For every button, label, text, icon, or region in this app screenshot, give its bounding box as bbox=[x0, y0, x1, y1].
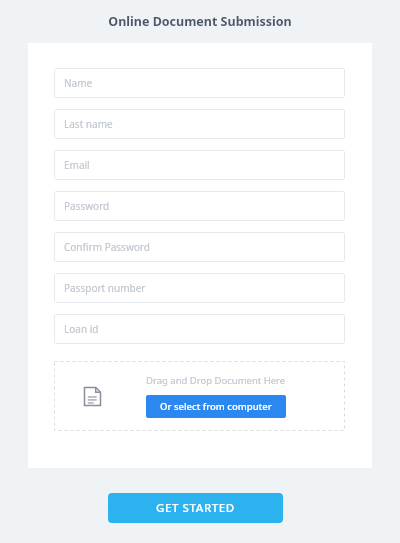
staticText: Email bbox=[64, 158, 90, 172]
button[interactable]: GET STARTED bbox=[108, 493, 283, 523]
staticText: Passport number bbox=[64, 281, 146, 295]
staticText: GET STARTED bbox=[156, 500, 235, 516]
staticText: Drag and Drop Document Here bbox=[146, 374, 286, 387]
staticText: Or select from computer bbox=[160, 400, 272, 413]
staticText: Name bbox=[64, 76, 93, 90]
staticText: Password bbox=[64, 199, 110, 213]
button[interactable]: Drag and Drop Document Here bbox=[54, 361, 345, 431]
staticText: Online Document Submission bbox=[108, 13, 292, 30]
button[interactable]: Last name bbox=[54, 109, 345, 139]
button[interactable]: Or select from computer bbox=[146, 395, 286, 418]
button[interactable]: Confirm Password bbox=[54, 232, 345, 262]
button[interactable]: Passport number bbox=[54, 273, 345, 303]
button[interactable]: Name bbox=[54, 68, 345, 98]
staticText: Confirm Password bbox=[64, 240, 150, 254]
button[interactable]: Password bbox=[54, 191, 345, 221]
staticText: Last name bbox=[64, 117, 113, 131]
button[interactable]: Loan id bbox=[54, 314, 345, 344]
button[interactable]: Email bbox=[54, 150, 345, 180]
staticText: Loan id bbox=[64, 322, 99, 336]
